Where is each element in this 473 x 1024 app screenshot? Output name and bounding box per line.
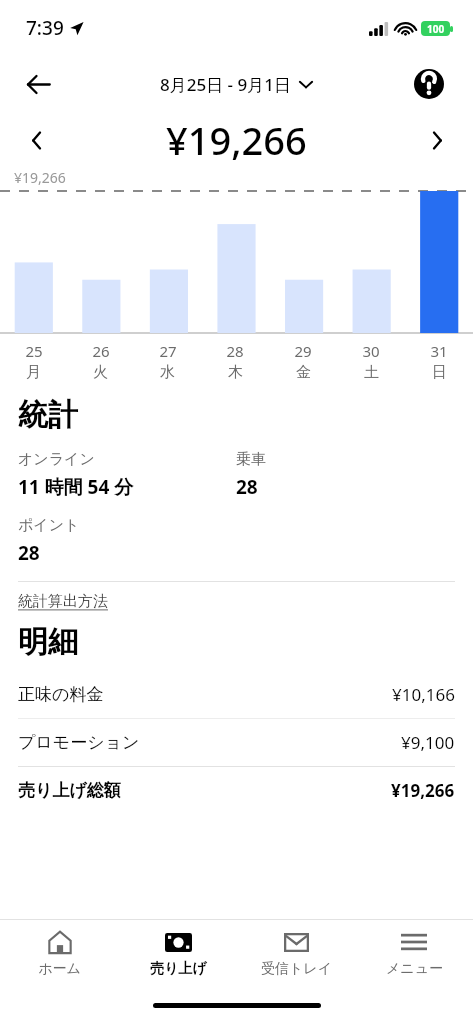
button[interactable]: Next week <box>417 120 457 160</box>
button[interactable]: 受信トレイ <box>237 920 355 986</box>
button[interactable]: 29 <box>269 341 337 382</box>
button[interactable]: 30 <box>337 341 405 382</box>
staticText: 28 <box>18 540 40 566</box>
staticText: 正味の料金 <box>18 684 392 705</box>
staticText: 26 <box>92 341 110 361</box>
button[interactable]: 売り上げ総額 <box>18 767 455 814</box>
staticText: 11 時間 54 分 <box>18 474 134 500</box>
staticText: 売り上げ <box>150 960 207 978</box>
staticText: 8月25日 - 9月1日 <box>160 73 291 96</box>
staticText: 土 <box>364 363 379 382</box>
staticText: ¥10,166 <box>392 683 455 706</box>
staticText: 統計算出方法 <box>18 592 108 611</box>
staticText: 金 <box>296 363 311 382</box>
staticText: 水 <box>160 363 175 382</box>
button[interactable]: ホーム <box>0 920 119 986</box>
staticText: ¥19,266 <box>166 114 307 166</box>
button[interactable]: 27 <box>134 341 201 382</box>
staticText: ¥9,100 <box>401 731 455 754</box>
staticText: プロモーション <box>18 732 401 753</box>
staticText: 100 <box>427 22 445 36</box>
staticText: 27 <box>159 341 177 361</box>
staticText: 30 <box>362 341 380 361</box>
button[interactable]: 25 <box>0 341 67 382</box>
button[interactable]: Previous week <box>16 120 56 160</box>
button[interactable]: 28 <box>201 341 269 382</box>
staticText: 木 <box>228 363 243 382</box>
staticText: 統計 <box>18 396 78 434</box>
button[interactable]: メニュー <box>355 920 473 986</box>
staticText: ¥19,266 <box>14 168 66 187</box>
staticText: 火 <box>93 363 108 382</box>
staticText: ポイント <box>18 516 80 535</box>
button[interactable]: Back <box>14 60 62 108</box>
button[interactable]: 正味の料金 <box>18 671 455 718</box>
staticText: 受信トレイ <box>261 960 332 978</box>
button[interactable]: 統計算出方法 <box>18 592 108 611</box>
staticText: 28 <box>226 341 244 361</box>
staticText: 明細 <box>18 623 78 661</box>
staticText: 31 <box>430 341 448 361</box>
staticText: ホーム <box>38 960 81 978</box>
staticText: 月 <box>26 363 41 382</box>
button[interactable]: Help <box>407 62 451 106</box>
button[interactable]: 売り上げ <box>119 920 237 986</box>
staticText: オンライン <box>18 450 95 469</box>
staticText: 7:39 <box>26 15 64 41</box>
staticText: 28 <box>236 474 258 500</box>
staticText: 乗車 <box>236 450 266 469</box>
button[interactable]: 8月25日 - 9月1日 <box>160 73 313 96</box>
staticText: 25 <box>25 341 43 361</box>
button[interactable]: 26 <box>67 341 134 382</box>
button[interactable] <box>0 189 473 335</box>
button[interactable]: 31 <box>405 341 473 382</box>
staticText: 日 <box>432 363 447 382</box>
button[interactable]: プロモーション <box>18 719 455 766</box>
staticText: 売り上げ総額 <box>18 780 391 801</box>
staticText: 29 <box>294 341 312 361</box>
staticText: ¥19,266 <box>391 779 455 802</box>
staticText: メニュー <box>386 960 443 978</box>
